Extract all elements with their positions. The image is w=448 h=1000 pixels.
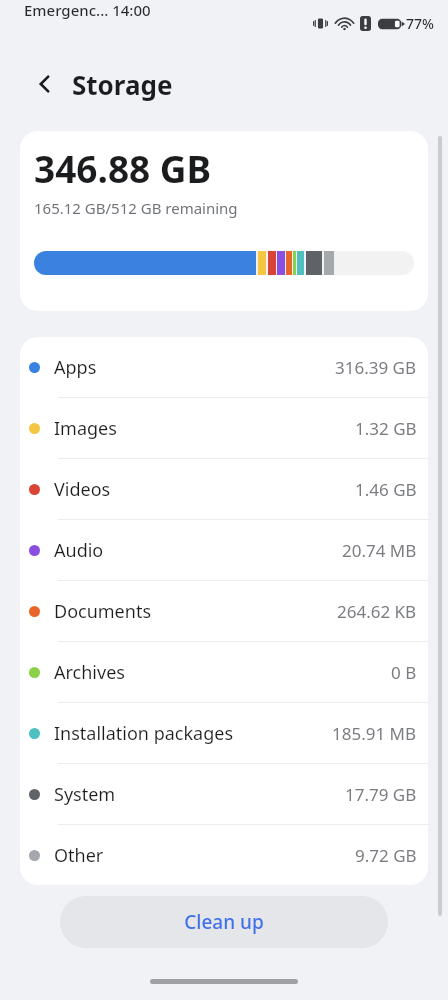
staticText: 1.32 GB (355, 417, 417, 440)
staticText: 9.72 GB (355, 844, 417, 867)
staticText: Clean up (184, 909, 264, 935)
staticText: Apps (54, 355, 97, 380)
button[interactable]: Apps (20, 337, 428, 397)
staticText: Videos (54, 477, 111, 502)
staticText: 185.91 MB (332, 722, 417, 745)
staticText: 346.88 GB (34, 143, 212, 193)
staticText: Storage (72, 67, 173, 102)
staticText: Emergenc... 14:00 (24, 0, 151, 20)
button[interactable]: Videos (20, 459, 428, 519)
staticText: Installation packages (54, 721, 234, 746)
button[interactable]: Installation packages (20, 703, 428, 763)
staticText: Images (54, 416, 117, 441)
button[interactable]: System (20, 764, 428, 824)
staticText: 264.62 KB (337, 600, 417, 623)
staticText: 165.12 GB/512 GB remaining (34, 198, 238, 218)
button[interactable]: Audio (20, 520, 428, 580)
button[interactable]: Back (28, 67, 62, 101)
staticText: System (54, 782, 116, 807)
button[interactable]: Archives (20, 642, 428, 702)
staticText: 1.46 GB (355, 478, 417, 501)
staticText: Archives (54, 660, 125, 685)
staticText: Other (54, 843, 104, 868)
button[interactable]: Clean up (60, 896, 388, 948)
staticText: Documents (54, 599, 152, 624)
staticText: 0 B (391, 661, 417, 684)
staticText: 17.79 GB (345, 783, 417, 806)
staticText: 20.74 MB (342, 539, 417, 562)
staticText: 77% (406, 14, 434, 33)
button[interactable]: Other (20, 825, 428, 885)
staticText: Audio (54, 538, 104, 563)
button[interactable]: Documents (20, 581, 428, 641)
staticText: 316.39 GB (335, 356, 417, 379)
button[interactable]: Images (20, 398, 428, 458)
